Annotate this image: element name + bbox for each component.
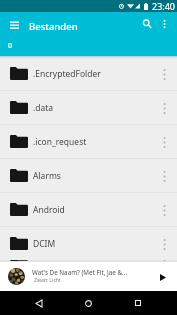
button[interactable]: Android xyxy=(0,193,177,227)
button[interactable]: Item options xyxy=(152,227,177,261)
button[interactable]: Search xyxy=(138,15,155,32)
button[interactable]: Item options xyxy=(152,91,177,125)
button[interactable]: .EncryptedFolder xyxy=(0,57,177,91)
staticText: Alarms xyxy=(33,170,152,182)
button[interactable]: Item options xyxy=(152,57,177,91)
staticText: Wat's De Naam? (Met Fit, Jae &... xyxy=(32,268,128,277)
staticText: .icon_request xyxy=(33,136,152,148)
staticText: .data xyxy=(33,102,152,114)
button[interactable]: Back xyxy=(26,291,51,315)
staticText: Zwart Licht xyxy=(34,276,61,283)
staticText: Bestanden xyxy=(29,20,78,33)
button[interactable]: Home xyxy=(76,291,101,315)
button[interactable]: .icon_request xyxy=(0,125,177,159)
button[interactable]: Alarms xyxy=(0,159,177,193)
button[interactable]: Item options xyxy=(152,193,177,227)
button[interactable]: Recents xyxy=(125,291,150,315)
staticText: Android xyxy=(33,204,152,216)
staticText: DCIM xyxy=(33,238,152,250)
button[interactable]: Menu xyxy=(4,14,24,34)
staticText: 23:40 xyxy=(152,0,176,12)
button[interactable]: .data xyxy=(0,91,177,125)
button[interactable]: Play xyxy=(152,266,174,288)
staticText: 0 xyxy=(8,41,13,51)
staticText: .EncryptedFolder xyxy=(33,68,152,80)
button[interactable]: Item options xyxy=(152,125,177,159)
button[interactable]: Item options xyxy=(152,159,177,193)
button[interactable]: More options xyxy=(155,14,173,34)
button[interactable]: DCIM xyxy=(0,227,177,261)
